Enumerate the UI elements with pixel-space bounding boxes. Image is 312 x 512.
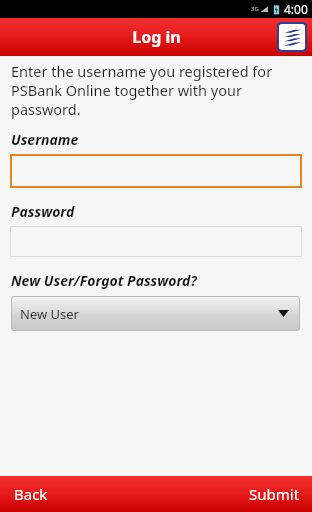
staticText: Password — [11, 202, 75, 221]
button[interactable]: Back — [14, 476, 48, 512]
button[interactable] — [10, 154, 302, 188]
staticText: New User/Forgot Password? — [11, 271, 197, 290]
button[interactable]: PSBank logo — [279, 24, 305, 50]
button[interactable]: New User — [11, 296, 300, 331]
staticText: 3G — [251, 5, 259, 13]
staticText: New User — [20, 305, 79, 323]
staticText: Back — [14, 484, 48, 504]
staticText: Enter the username you registered for PS… — [11, 61, 300, 119]
staticText: Log in — [132, 26, 181, 48]
button[interactable]: Submit — [249, 476, 300, 512]
staticText: Username — [11, 130, 79, 149]
staticText: Submit — [249, 484, 300, 504]
button[interactable] — [10, 226, 302, 257]
staticText: 4:00 — [284, 1, 308, 17]
